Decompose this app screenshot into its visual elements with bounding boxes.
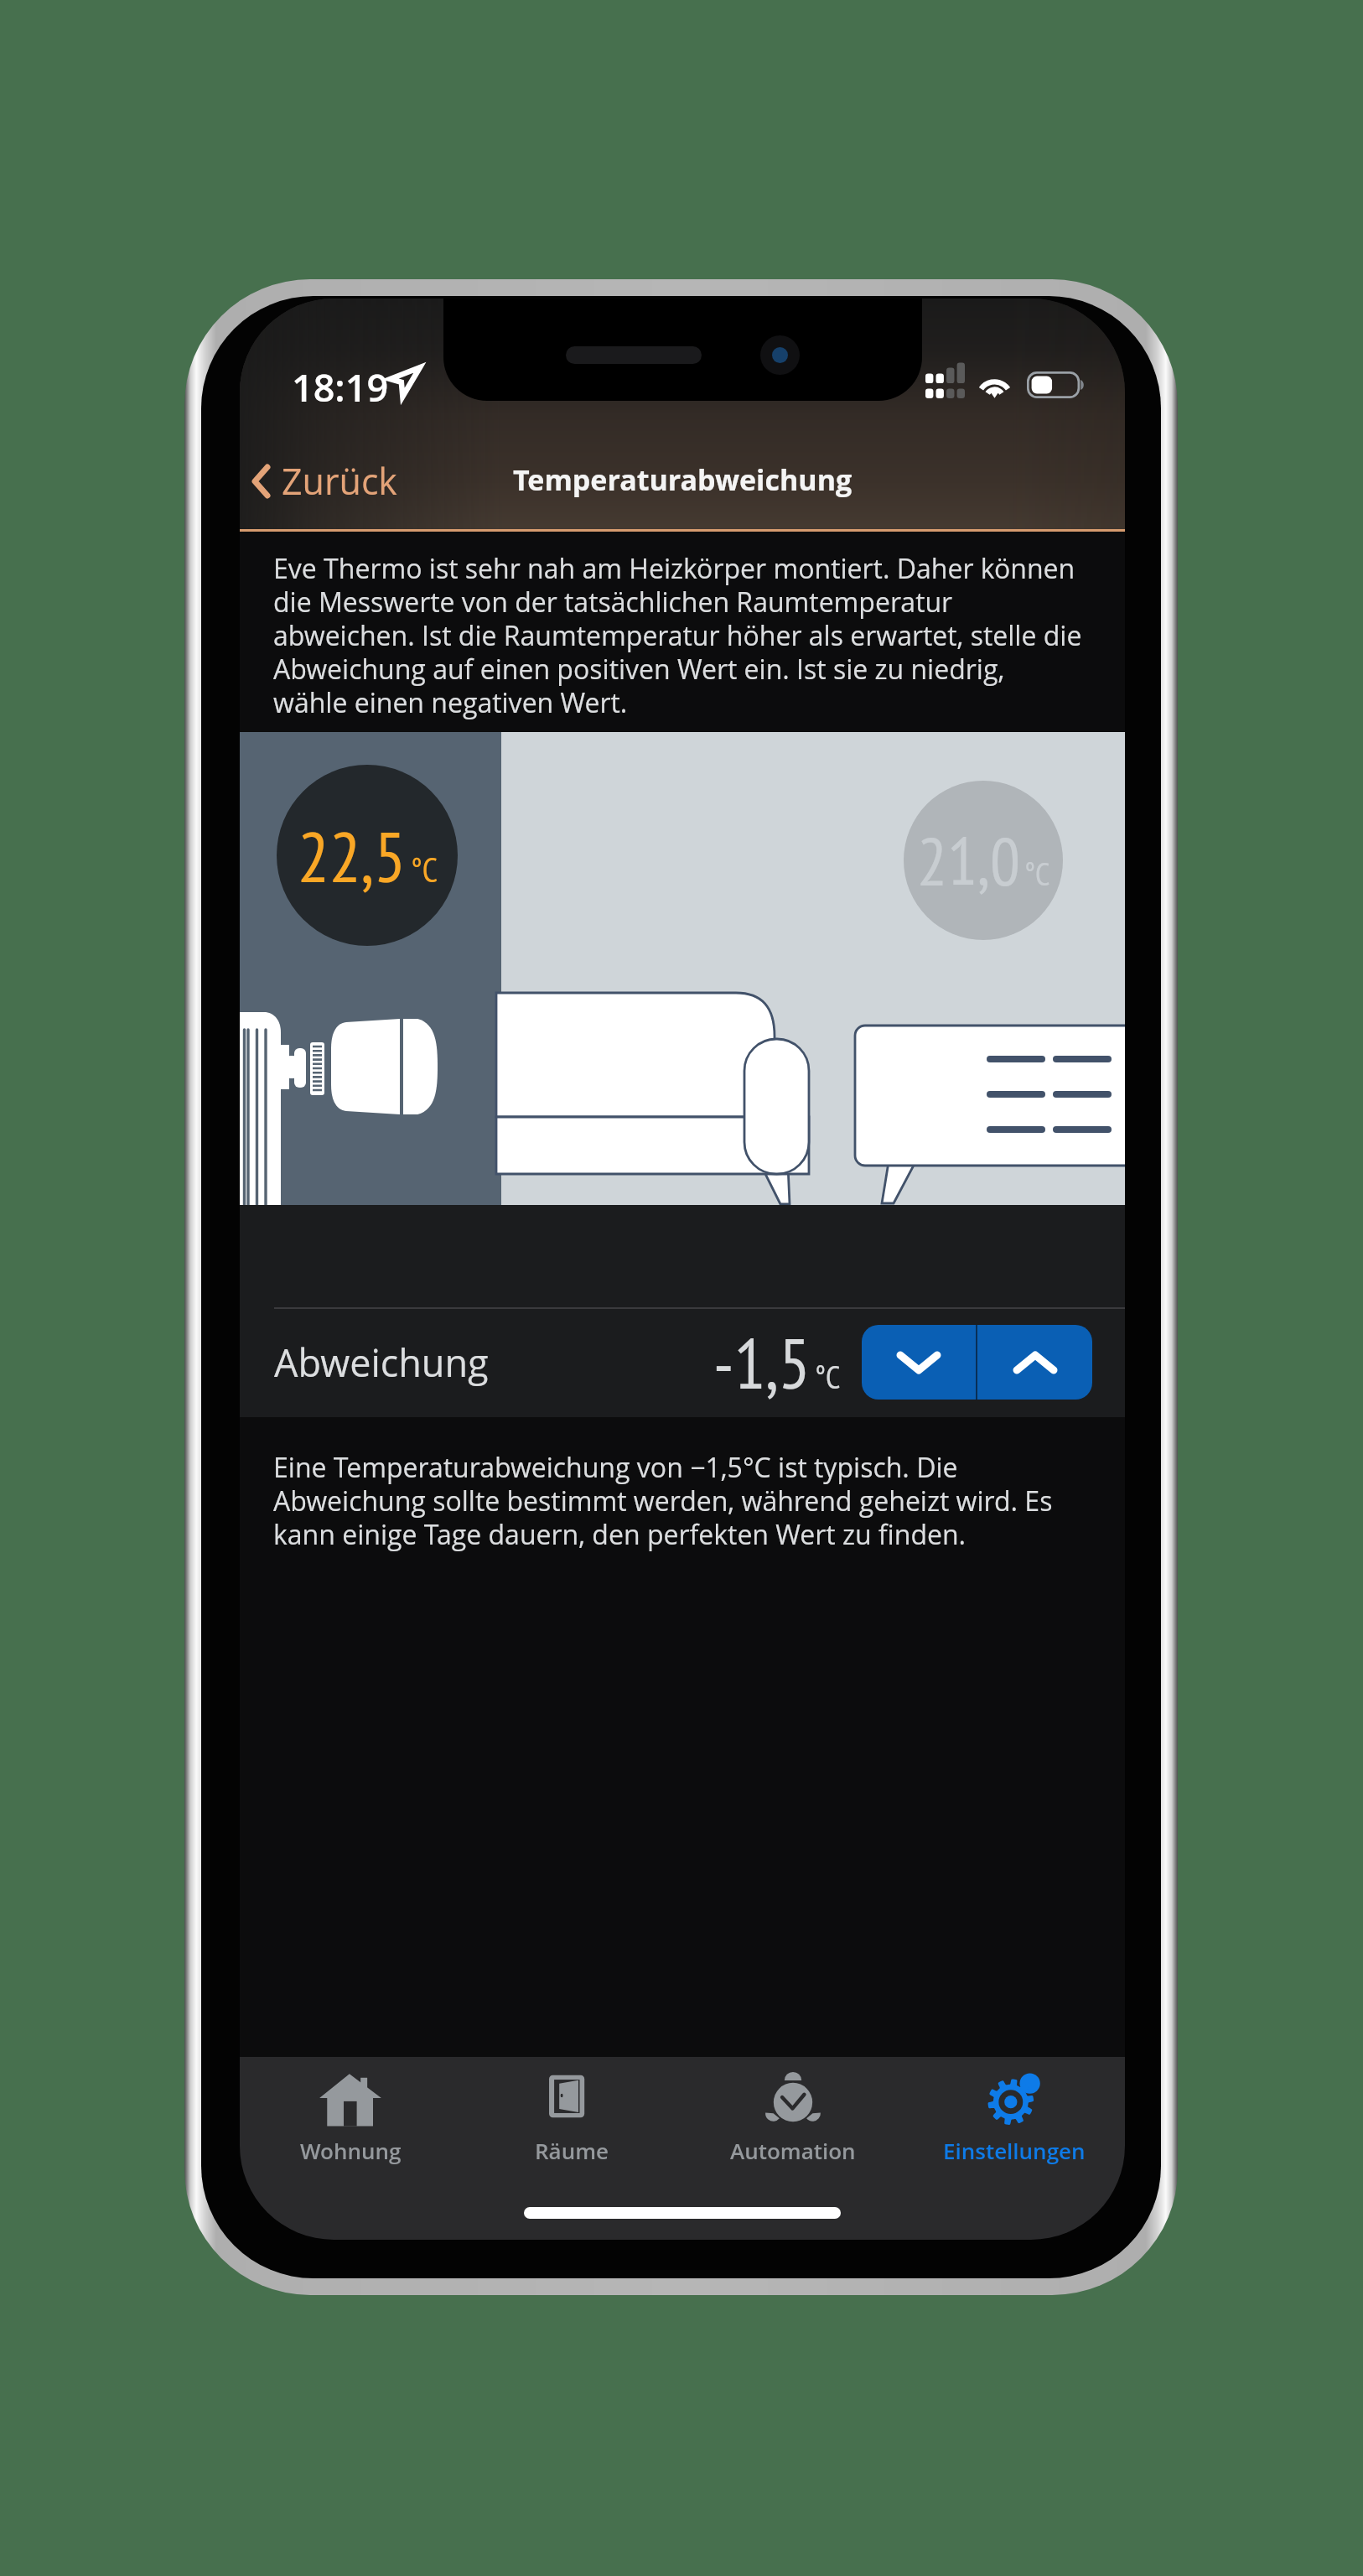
staticText: Wohnung [300, 2136, 402, 2165]
staticText: Räume [535, 2136, 609, 2165]
staticText: °C [1024, 853, 1050, 894]
staticText: Einstellungen [943, 2136, 1086, 2165]
staticText: Zurück [282, 456, 397, 506]
button[interactable]: Wert erhöhen [977, 1325, 1092, 1400]
staticText: 22,5 [298, 810, 407, 901]
staticText: 18:19 [292, 361, 389, 413]
button[interactable]: Einstellungen [904, 2057, 1125, 2179]
button[interactable]: Abweichung [240, 1307, 1125, 1417]
staticText: -1,5 [713, 1317, 811, 1408]
button[interactable]: Zurück [240, 449, 412, 512]
staticText: Temperaturabweichung [513, 460, 853, 499]
button[interactable]: Wert verringern [862, 1325, 976, 1400]
staticText: °C [815, 1356, 841, 1397]
button[interactable]: Wohnung [240, 2057, 461, 2179]
staticText: Abweichung [274, 1337, 489, 1388]
staticText: °C [411, 848, 438, 891]
staticText: Automation [730, 2136, 856, 2165]
staticText: Eve Thermo ist sehr nah am Heizkörper mo… [273, 550, 1082, 720]
button[interactable]: Räume [461, 2057, 682, 2179]
staticText: Eine Temperaturabweichung von −1,5°C ist… [273, 1449, 1053, 1552]
button[interactable]: Automation [682, 2057, 904, 2179]
staticText: 21,0 [917, 817, 1020, 904]
